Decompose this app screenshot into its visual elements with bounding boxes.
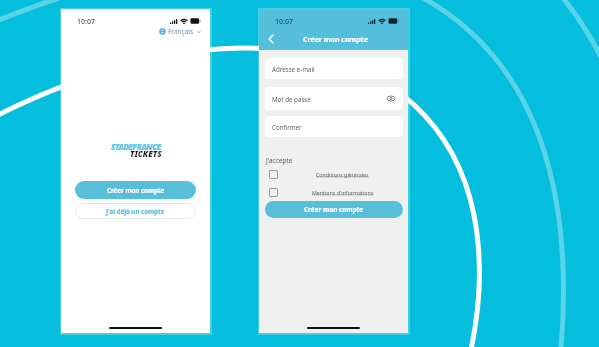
staticText: Confirmer <box>272 123 302 131</box>
button[interactable]: Français <box>156 25 204 38</box>
staticText: Mot de passe <box>272 95 311 103</box>
staticText: Créer mon compte <box>107 186 165 194</box>
button[interactable]: Confirmer <box>265 116 403 137</box>
staticText: Conditions générales <box>316 171 369 178</box>
staticText: Créer mon compte <box>304 205 364 214</box>
staticText: Mentions d'informations <box>312 189 374 196</box>
staticText: TICKETS <box>130 148 162 159</box>
button[interactable]: Créer mon compte <box>265 201 403 218</box>
button[interactable]: Mentions d'informations <box>259 186 408 198</box>
staticText: J'ai déjà un compte <box>106 207 165 215</box>
button[interactable]: Mot de passe <box>265 87 403 110</box>
staticText: J'accepte <box>266 156 293 165</box>
staticText: 10:07 <box>77 17 95 27</box>
button[interactable]: Créer mon compte <box>75 181 196 199</box>
staticText: Français <box>168 27 194 36</box>
button[interactable]: Adresse e-mail <box>265 58 403 79</box>
button[interactable]: Back <box>264 31 280 47</box>
button[interactable]: J'ai déjà un compte <box>75 203 196 219</box>
staticText: STADEFRANCE <box>111 141 161 152</box>
staticText: Adresse e-mail <box>272 65 315 73</box>
button[interactable]: Conditions générales <box>259 168 408 180</box>
staticText: 10:07 <box>275 17 293 27</box>
staticText: Créer mon compte <box>303 35 368 45</box>
